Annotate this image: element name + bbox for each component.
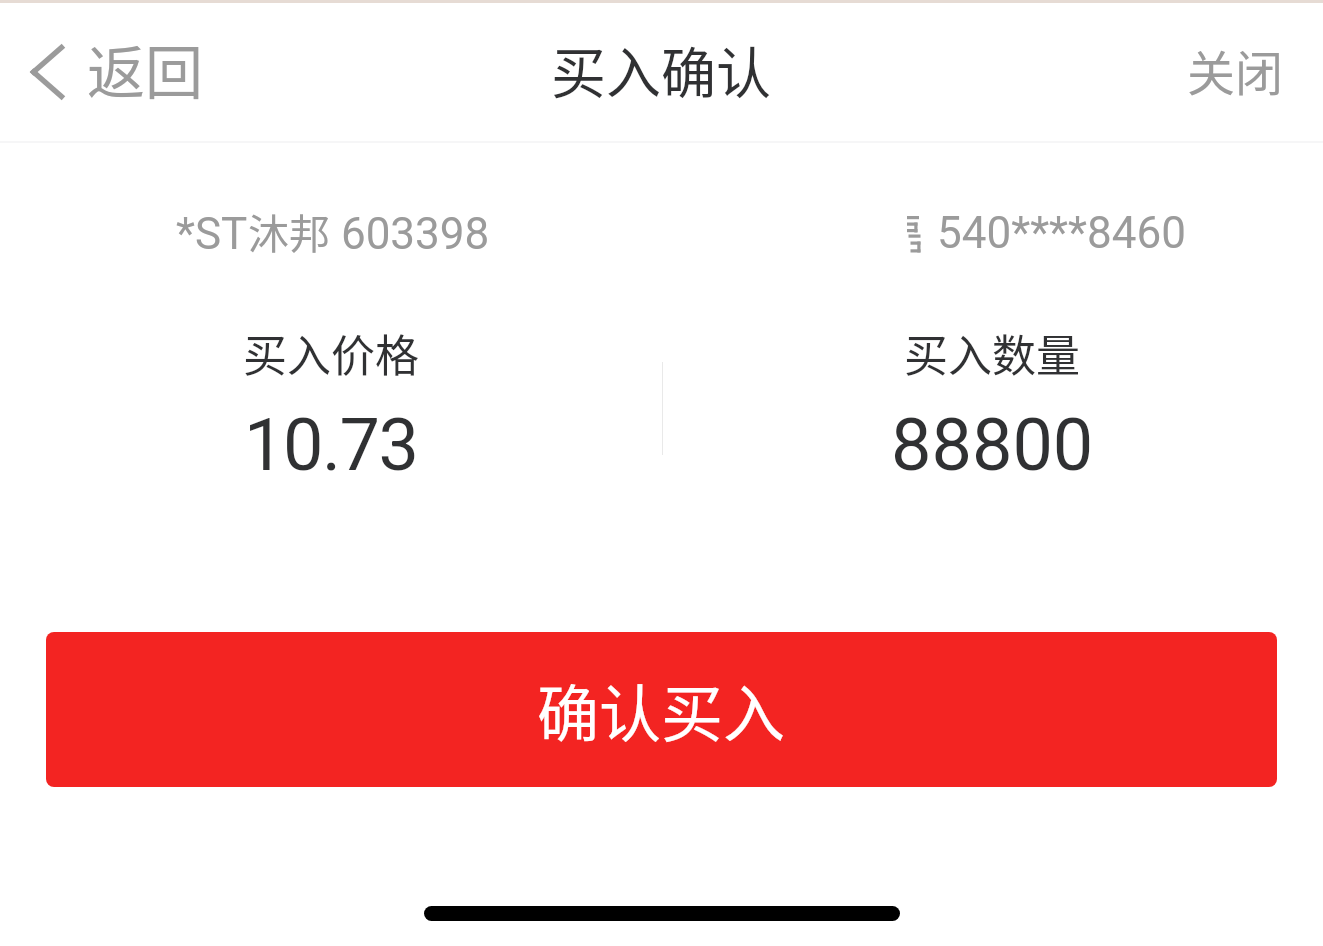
staticText: 买入确认 bbox=[551, 29, 772, 109]
staticText: 买入价格 bbox=[243, 321, 419, 385]
staticText: *ST bbox=[176, 208, 248, 260]
staticText: 603398 bbox=[330, 208, 490, 260]
staticText: 540****8460 bbox=[937, 207, 1186, 259]
button[interactable]: 确认买入 bbox=[46, 632, 1277, 787]
staticText: 沐邦 bbox=[248, 201, 330, 260]
staticText: 返回 bbox=[87, 27, 204, 111]
staticText: 确认买入 bbox=[537, 665, 786, 755]
button[interactable]: 关闭 bbox=[1147, 0, 1323, 141]
staticText: 买入数量 bbox=[904, 321, 1080, 385]
staticText: 10.73 bbox=[244, 403, 418, 487]
button[interactable]: 返回 bbox=[0, 0, 228, 141]
staticText: 88800 bbox=[891, 403, 1094, 487]
staticText: 关闭 bbox=[1187, 35, 1284, 105]
other: 交易所 bbox=[907, 209, 923, 259]
